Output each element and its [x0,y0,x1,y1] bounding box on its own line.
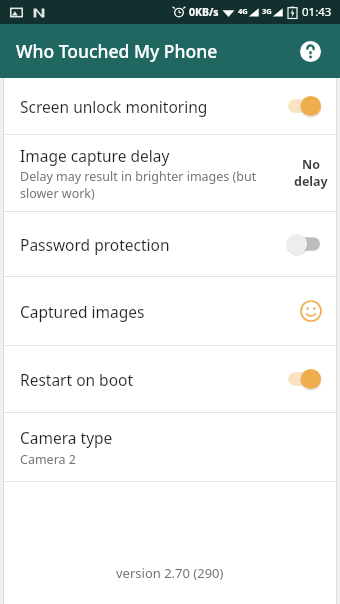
staticText: Image capture delay [20,145,170,166]
staticText: Delay may result in brighter images (but… [20,168,284,202]
staticText: No [302,156,320,173]
staticText: Camera 2 [20,451,76,468]
button[interactable]: Password protection [0,212,340,276]
staticText: version 2.70 (290) [116,564,224,582]
staticText: delay [294,173,328,190]
staticText: Password protection [20,234,286,255]
staticText: Who Touched My Phone [16,39,218,63]
button[interactable]: Help [290,31,330,71]
staticText: 0KB/s [189,5,219,19]
staticText: Camera type [20,427,113,448]
staticText: 3G [262,6,272,16]
staticText: Screen unlock monitoring [20,96,286,117]
button[interactable]: Camera type [0,413,340,481]
button[interactable]: Captured images [0,277,340,345]
staticText: 4G [238,6,248,16]
button[interactable]: Restart on boot [0,346,340,412]
button[interactable]: Image capture delay [0,135,340,211]
staticText: 01:43 [302,4,332,20]
staticText: Restart on boot [20,369,286,390]
staticText: Captured images [20,301,300,322]
button[interactable]: Screen unlock monitoring [0,78,340,134]
